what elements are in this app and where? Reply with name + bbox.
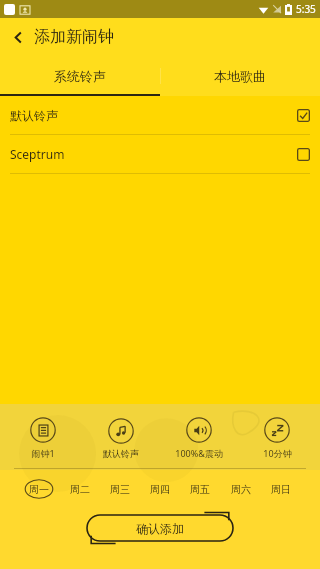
staticText: 确认添加: [136, 521, 184, 536]
button[interactable]: 默认铃声: [0, 96, 320, 134]
staticText: 周五: [190, 483, 210, 496]
button[interactable]: Snooze: [242, 417, 312, 459]
staticText: 周六: [231, 483, 251, 496]
button[interactable]: 周三: [105, 479, 135, 499]
button[interactable]: Ringtone: [86, 418, 156, 459]
button[interactable]: Volume: [164, 417, 234, 459]
staticText: 周日: [271, 483, 291, 496]
staticText: 10分钟: [263, 447, 292, 459]
staticText: 100%&震动: [175, 447, 223, 459]
button[interactable]: 确认添加: [86, 514, 234, 542]
staticText: 闹钟1: [31, 447, 55, 459]
button[interactable]: 周日: [266, 479, 296, 499]
button[interactable]: Sceptrum: [0, 135, 320, 173]
staticText: 周二: [70, 483, 90, 496]
staticText: 周三: [110, 483, 130, 496]
button[interactable]: 周六: [226, 479, 256, 499]
staticText: 添加新闹钟: [34, 27, 114, 47]
button[interactable]: 周一: [24, 479, 54, 499]
staticText: Sceptrum: [10, 146, 297, 162]
button[interactable]: 本地歌曲: [160, 56, 320, 96]
staticText: 周四: [150, 483, 170, 496]
staticText: 5:35: [296, 2, 316, 16]
button[interactable]: Back: [4, 23, 32, 51]
button[interactable]: Alarm name: [8, 417, 78, 459]
button[interactable]: 周五: [185, 479, 215, 499]
staticText: 默认铃声: [10, 108, 297, 123]
button[interactable]: 周二: [65, 479, 95, 499]
button[interactable]: 系统铃声: [0, 56, 160, 96]
staticText: 默认铃声: [103, 448, 139, 459]
staticText: 本地歌曲: [214, 68, 266, 84]
staticText: 周一: [29, 483, 49, 496]
button[interactable]: 周四: [145, 479, 175, 499]
staticText: 系统铃声: [54, 68, 106, 84]
